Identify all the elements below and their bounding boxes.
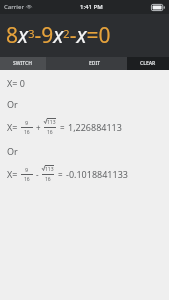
- button[interactable]: CLEAR: [127, 57, 169, 70]
- staticText: 16: [45, 176, 51, 183]
- staticText: 16: [24, 176, 30, 183]
- staticText: Or: [7, 98, 18, 110]
- staticText: =: [58, 169, 63, 180]
- staticText: EDIT: [89, 60, 101, 67]
- staticText: 9: [25, 119, 29, 126]
- staticText: -: [36, 169, 39, 180]
- staticText: Or: [7, 145, 18, 157]
- staticText: X=: [7, 168, 18, 180]
- staticText: CLEAR: [140, 60, 156, 67]
- staticText: 9: [25, 166, 29, 173]
- button[interactable]: EDIT: [46, 57, 127, 70]
- staticText: =: [60, 122, 65, 133]
- staticText: 1:41 PM: [80, 3, 103, 11]
- button[interactable]: SWITCH: [0, 57, 46, 70]
- other: Battery: [151, 4, 165, 11]
- staticText: SWITCH: [13, 60, 33, 67]
- staticText: 113: [47, 119, 56, 126]
- staticText: 113: [45, 166, 54, 173]
- staticText: Carrier: [4, 3, 24, 11]
- staticText: +: [36, 122, 41, 133]
- staticText: -0.1018841133: [66, 168, 128, 180]
- staticText: X=: [7, 121, 18, 133]
- staticText: X= 0: [7, 77, 25, 89]
- other: Wi-Fi: [26, 4, 32, 10]
- staticText: 16: [47, 129, 53, 136]
- staticText: 8x3-9x2-x=0: [6, 21, 111, 50]
- staticText: 1,226884113: [68, 121, 122, 133]
- staticText: 16: [24, 129, 30, 136]
